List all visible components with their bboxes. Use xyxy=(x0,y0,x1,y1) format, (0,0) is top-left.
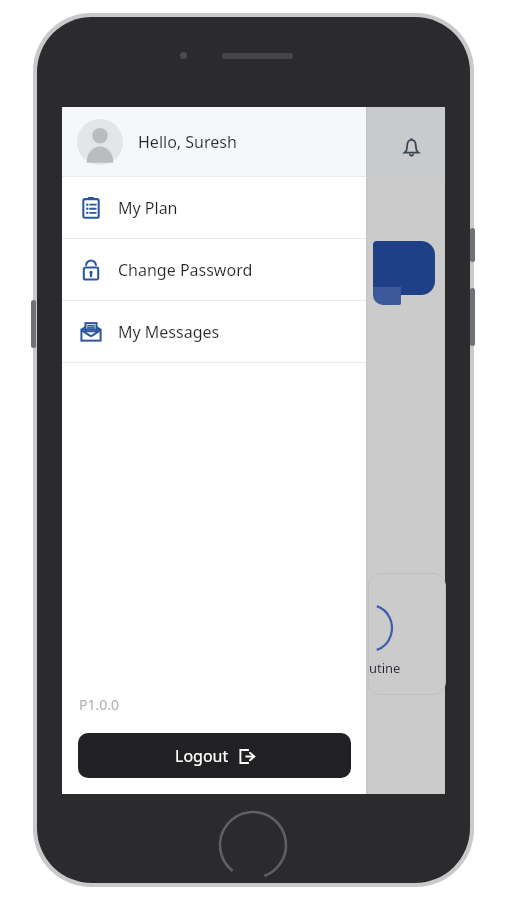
staticText: Hello, Suresh xyxy=(138,131,237,153)
staticText: P1.0.0 xyxy=(79,695,119,714)
staticText: My Plan xyxy=(118,197,178,219)
button[interactable]: Hello, Suresh xyxy=(62,107,367,176)
button[interactable]: Change Password xyxy=(62,239,367,300)
staticText: utine xyxy=(369,659,401,677)
button[interactable]: My Plan xyxy=(62,177,367,238)
button[interactable]: Logout xyxy=(78,733,351,778)
button[interactable]: My Messages xyxy=(62,301,367,362)
button[interactable]: Notifications xyxy=(392,128,430,166)
staticText: Change Password xyxy=(118,259,253,281)
staticText: Logout xyxy=(175,745,229,767)
staticText: My Messages xyxy=(118,321,220,343)
